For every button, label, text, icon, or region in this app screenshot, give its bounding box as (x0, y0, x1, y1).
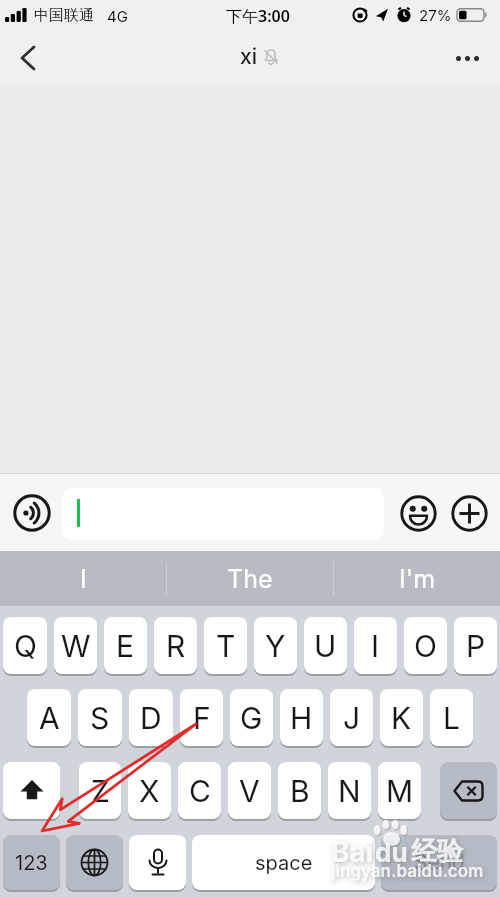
button[interactable] (398, 493, 438, 533)
staticText: H (290, 700, 313, 736)
staticText: J (343, 700, 361, 736)
staticText: I'm (399, 564, 436, 594)
staticText: xi (240, 44, 257, 69)
button[interactable]: J (330, 689, 373, 746)
staticText: jingyan.baidu.com (331, 861, 484, 882)
staticText: 4G (107, 7, 128, 25)
button[interactable]: S (78, 689, 122, 746)
button[interactable]: space (192, 835, 375, 890)
button[interactable]: F (180, 689, 223, 746)
button[interactable]: K (380, 689, 423, 746)
button[interactable] (129, 835, 186, 890)
button[interactable]: T (204, 617, 247, 674)
button[interactable]: A (27, 689, 71, 746)
staticText: Bai (331, 835, 374, 869)
button[interactable]: I'm (334, 551, 500, 606)
button[interactable]: 123 (3, 835, 60, 890)
button[interactable] (440, 762, 497, 819)
staticText: O (414, 628, 437, 664)
button[interactable]: U (304, 617, 347, 674)
staticText: G (240, 700, 263, 736)
staticText: K (391, 700, 412, 736)
button[interactable]: X (128, 762, 171, 819)
staticText: Send (414, 850, 465, 875)
button[interactable]: The (167, 551, 333, 606)
staticText: du (375, 837, 408, 868)
button[interactable]: N (328, 762, 371, 819)
staticText: The (227, 564, 273, 594)
button[interactable]: M (378, 762, 421, 819)
button[interactable]: E (104, 617, 147, 674)
staticText: F (193, 700, 211, 736)
staticText: Y (265, 628, 286, 664)
button[interactable]: I (0, 551, 166, 606)
staticText: S (90, 700, 110, 736)
staticText: A (39, 700, 60, 736)
button[interactable]: P (454, 617, 497, 674)
button[interactable] (448, 45, 486, 71)
staticText: Q (14, 628, 37, 664)
button[interactable] (12, 493, 52, 533)
staticText: I (80, 564, 87, 594)
staticText: E (116, 628, 135, 664)
staticText: D (140, 700, 162, 736)
staticText: N (338, 773, 361, 809)
staticText: V (239, 773, 260, 809)
button[interactable]: C (178, 762, 221, 819)
button[interactable]: Z (79, 762, 121, 819)
staticText: U (314, 628, 337, 664)
button[interactable]: Q (3, 617, 47, 674)
button[interactable]: R (154, 617, 197, 674)
button[interactable]: Send (381, 835, 497, 890)
button[interactable]: L (430, 689, 473, 746)
staticText: W (61, 628, 91, 664)
staticText: 123 (15, 851, 48, 875)
button[interactable]: B (278, 762, 321, 819)
button[interactable]: I (354, 617, 397, 674)
button[interactable] (449, 493, 489, 533)
button[interactable]: W (54, 617, 97, 674)
button[interactable] (62, 488, 384, 540)
button[interactable] (12, 42, 44, 74)
staticText: 27% (419, 6, 452, 24)
staticText: L (443, 700, 460, 736)
button[interactable] (66, 835, 123, 890)
button[interactable]: O (404, 617, 447, 674)
staticText: R (166, 628, 186, 664)
button[interactable]: G (230, 689, 273, 746)
staticText: Z (91, 773, 110, 809)
button[interactable] (3, 762, 60, 819)
staticText: M (386, 773, 414, 809)
button[interactable]: V (228, 762, 271, 819)
staticText: space (255, 851, 313, 875)
button[interactable]: Y (254, 617, 297, 674)
staticText: 经验 (411, 835, 463, 868)
staticText: T (216, 628, 236, 664)
staticText: 下午3:00 (226, 5, 290, 27)
staticText: P (466, 628, 486, 664)
button[interactable]: D (129, 689, 173, 746)
staticText: X (139, 773, 160, 809)
staticText: B (290, 773, 310, 809)
staticText: I (371, 628, 380, 664)
staticText: C (189, 773, 211, 809)
button[interactable]: H (280, 689, 323, 746)
staticText: 中国联通 (34, 6, 94, 25)
